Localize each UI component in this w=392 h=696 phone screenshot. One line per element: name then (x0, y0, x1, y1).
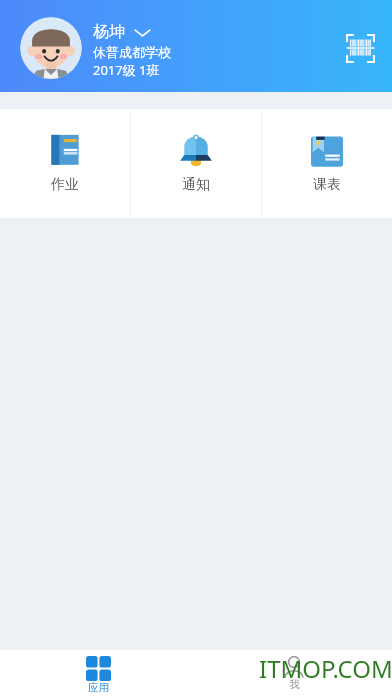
staticText: 我 (289, 678, 300, 691)
button[interactable]: 我 (196, 650, 392, 696)
staticText: 2017级 1班 (93, 61, 160, 79)
staticText: ITMOP.COM (259, 652, 392, 685)
button[interactable]: Scan (346, 34, 375, 63)
button[interactable]: Avatar (20, 17, 82, 79)
button[interactable]: 作业 (0, 109, 130, 218)
button[interactable]: 课表 (262, 109, 392, 218)
button[interactable]: 应用 (0, 650, 196, 696)
staticText: 杨坤 (93, 22, 125, 42)
staticText: 课表 (313, 176, 341, 194)
staticText: 作业 (51, 176, 79, 194)
button[interactable]: 通知 (131, 109, 261, 218)
staticText: 应用 (88, 681, 109, 694)
staticText: 通知 (182, 176, 210, 194)
staticText: 休普成都学校 (93, 44, 171, 60)
